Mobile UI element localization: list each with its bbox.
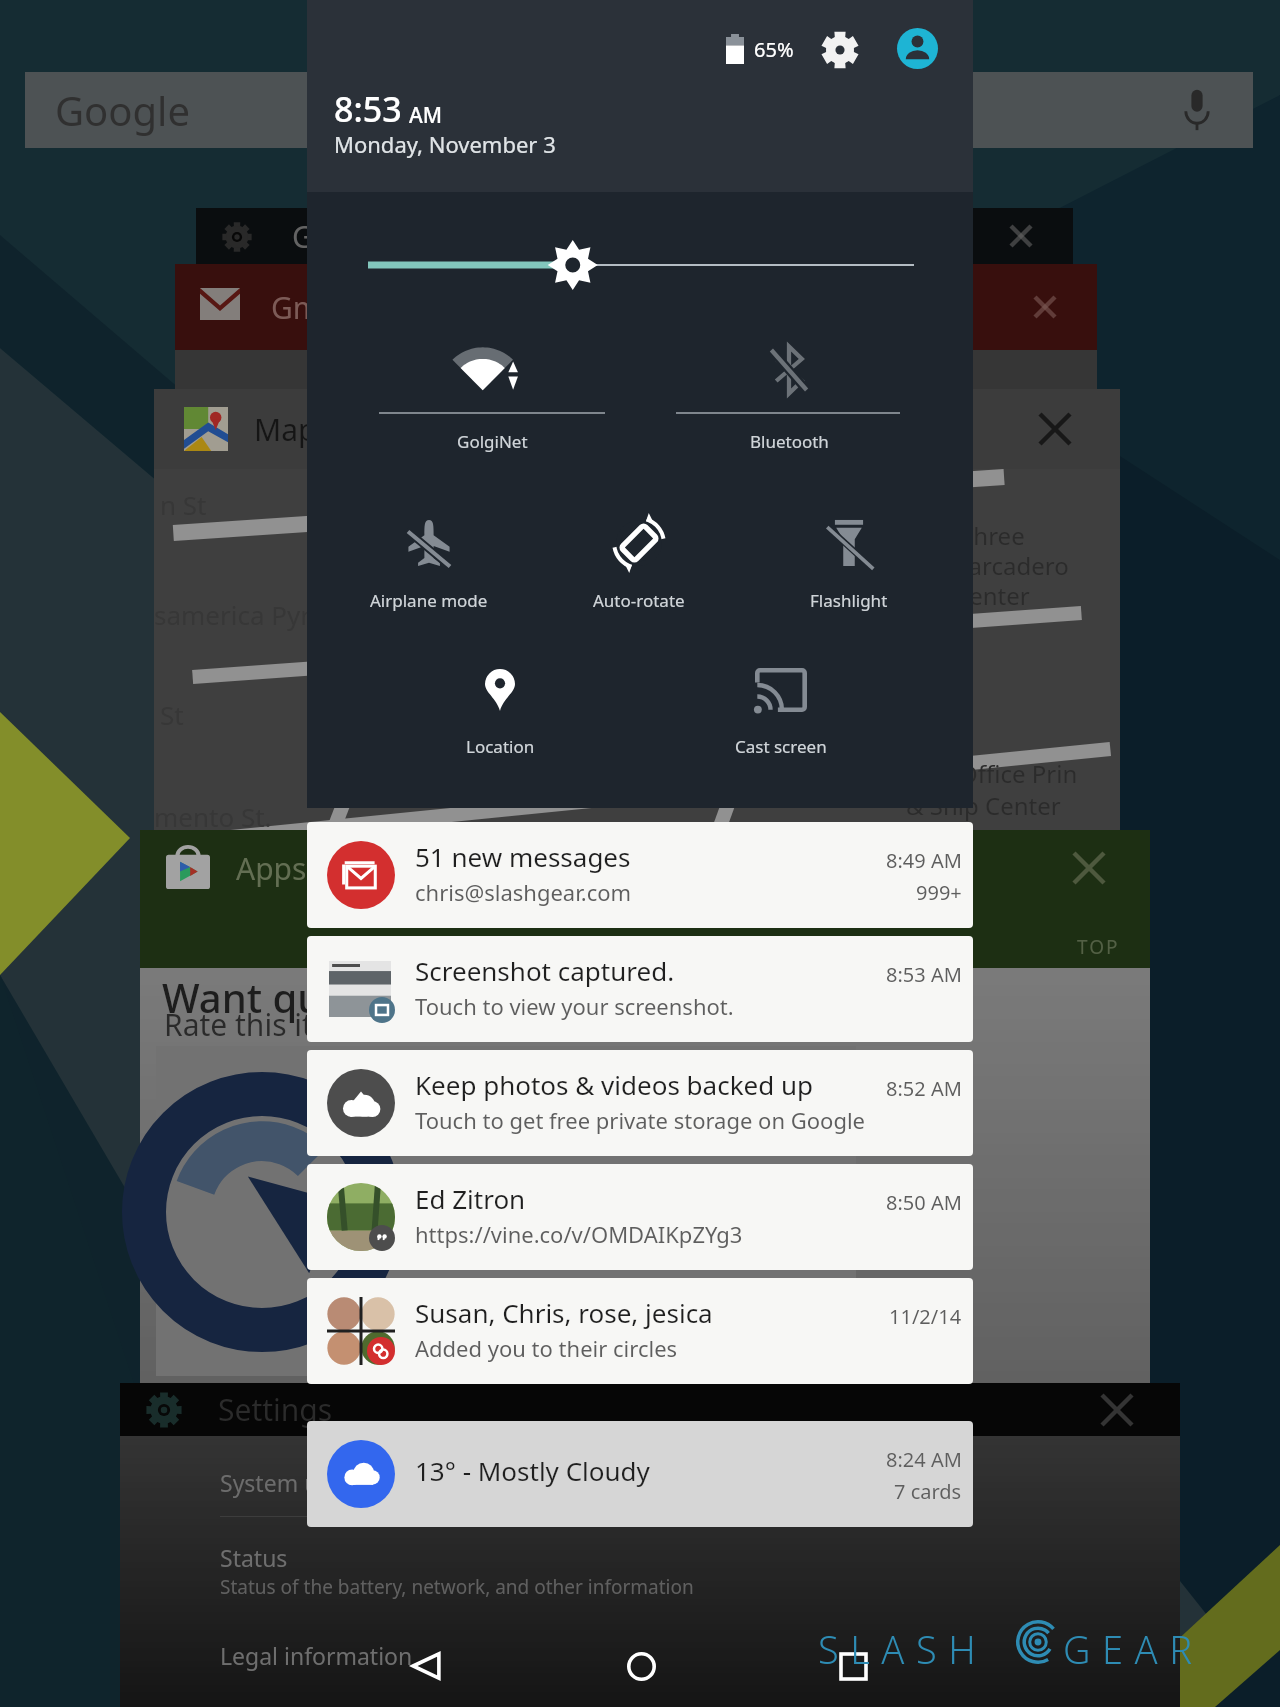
staticText: Legal information xyxy=(220,1640,413,1671)
staticText: 999+ xyxy=(916,879,962,906)
staticText: System updates xyxy=(220,1467,392,1498)
staticText: Davis St xyxy=(860,599,949,632)
staticText: 8:24 AM xyxy=(886,1446,962,1473)
staticText: Google xyxy=(55,83,190,137)
button[interactable] xyxy=(374,503,484,583)
button[interactable] xyxy=(726,650,836,730)
staticText: Added you to their circles xyxy=(415,1333,678,1363)
button[interactable]: Recent apps xyxy=(813,1626,893,1706)
staticText: Susan, Chris, rose, jesica xyxy=(415,1295,713,1330)
button[interactable]: Screenshot captured. xyxy=(307,936,973,1042)
staticText: Gma xyxy=(271,287,338,328)
staticText: 8:53 AM xyxy=(886,961,962,988)
button[interactable]: User profile xyxy=(891,22,943,74)
staticText: 51 new messages xyxy=(415,839,631,874)
button[interactable] xyxy=(437,330,547,410)
staticText: GEAR xyxy=(1063,1623,1204,1675)
staticText: Status xyxy=(220,1542,288,1573)
staticText: Center xyxy=(954,579,1030,612)
staticText: Go xyxy=(292,216,332,257)
staticText: Rate this item and more xyxy=(164,1004,503,1045)
staticText: & Ship Center xyxy=(906,789,1061,822)
staticText: Want quick access? xyxy=(162,970,528,1024)
staticText: 65% xyxy=(754,36,794,63)
button[interactable] xyxy=(584,503,694,583)
button[interactable] xyxy=(734,330,844,410)
staticText: SLASH xyxy=(818,1623,988,1675)
button[interactable] xyxy=(794,503,904,583)
staticText: Ed Zitron xyxy=(415,1181,526,1216)
staticText: samerica Pyramid xyxy=(154,597,373,632)
staticText: https://vine.co/v/OMDAIKpZYg3 xyxy=(415,1219,743,1249)
button[interactable]: Keep photos & videos backed up xyxy=(307,1050,973,1156)
button[interactable]: Ed Zitron xyxy=(307,1164,973,1270)
button[interactable]: 51 new messages xyxy=(307,822,973,928)
staticText: Cast screen xyxy=(735,735,827,758)
button[interactable] xyxy=(445,650,555,730)
staticText: Touch to get free private storage on Goo… xyxy=(415,1105,865,1135)
staticText: Embarcadero xyxy=(918,549,1069,582)
staticText: 13° - Mostly Cloudy xyxy=(415,1453,650,1488)
staticText: Three xyxy=(960,519,1025,552)
staticText: Maps xyxy=(254,409,331,450)
staticText: 8:49 AM xyxy=(886,847,962,874)
staticText: Flashlight xyxy=(810,589,888,612)
staticText: Bluetooth xyxy=(750,430,829,453)
staticText: 7 cards xyxy=(894,1478,962,1505)
button[interactable]: Settings xyxy=(812,22,868,78)
staticText: 11/2/14 xyxy=(889,1303,962,1330)
staticText: FedEx Office Prin xyxy=(886,757,1078,790)
staticText: Keep photos & videos backed up xyxy=(415,1067,814,1102)
staticText: CATEGORIES xyxy=(649,934,781,960)
staticText: Screenshot captured. xyxy=(415,953,675,988)
staticText: TOP xyxy=(1077,934,1120,960)
staticText: Airplane mode xyxy=(370,589,488,612)
staticText: Monday, November 3 xyxy=(334,129,556,159)
button[interactable]: Back xyxy=(386,1626,466,1706)
staticText: Settings xyxy=(218,1389,333,1430)
staticText: 8:53 xyxy=(334,86,402,132)
staticText: Auto-rotate xyxy=(593,589,685,612)
button[interactable]: 13° - Mostly Cloudy xyxy=(307,1421,973,1527)
staticText: Touch to view your screenshot. xyxy=(415,991,734,1021)
staticText: Location xyxy=(466,735,535,758)
staticText: 8:50 AM xyxy=(886,1189,962,1216)
staticText: Apps xyxy=(236,848,307,889)
staticText: GolgiNet xyxy=(457,430,528,453)
staticText: 8:52 AM xyxy=(886,1075,962,1102)
button[interactable]: Susan, Chris, rose, jesica xyxy=(307,1278,973,1384)
staticText: chris@slashgear.com xyxy=(415,877,632,907)
button[interactable]: Home xyxy=(601,1626,681,1706)
staticText: AM xyxy=(409,101,443,130)
staticText: mento St. xyxy=(154,799,272,834)
staticText: Status of the battery, network, and othe… xyxy=(220,1574,694,1600)
